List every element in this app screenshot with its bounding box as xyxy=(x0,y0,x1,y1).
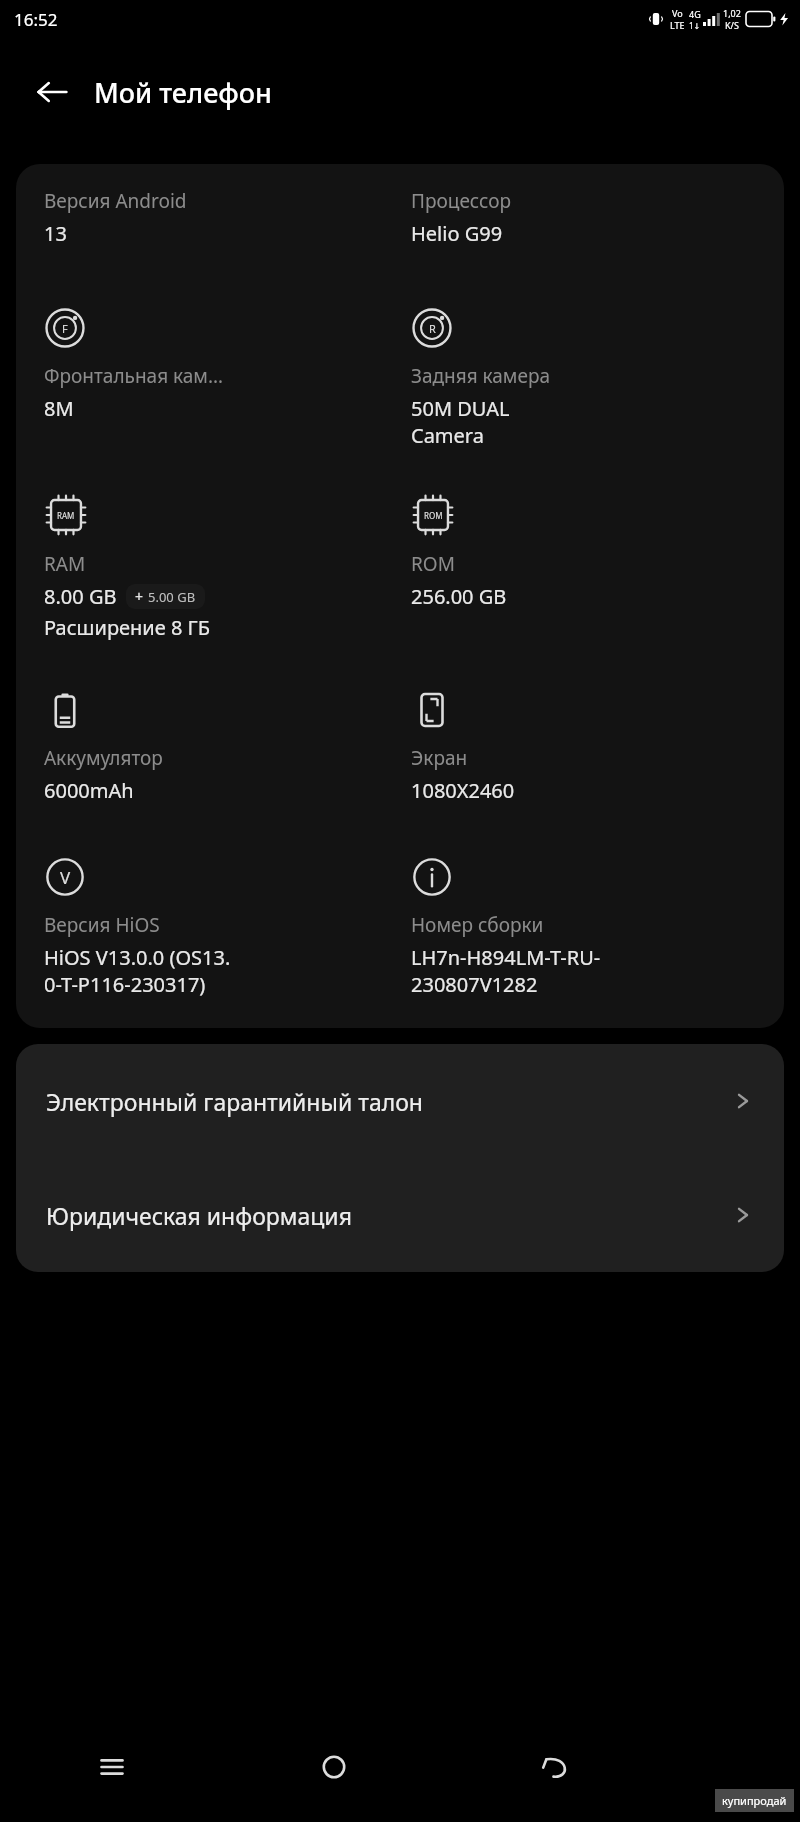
staticText: 6000mAh xyxy=(44,777,134,804)
staticText: Мой телефон xyxy=(94,74,272,111)
staticText: Процессор xyxy=(411,188,512,214)
button[interactable]: Электронный гарантийный талон xyxy=(16,1044,784,1158)
staticText: Задняя камера xyxy=(411,363,551,389)
staticText: V xyxy=(60,866,71,889)
staticText: Аккумулятор xyxy=(44,745,163,771)
staticText: Номер сборки xyxy=(411,912,544,938)
staticText: Версия HiOS xyxy=(44,912,160,938)
staticText: Экран xyxy=(411,745,468,771)
staticText: 5.00 GB xyxy=(148,588,196,606)
staticText: 50M DUAL xyxy=(411,395,510,422)
staticText: Расширение 8 ГБ xyxy=(44,614,211,641)
staticText: 1,02 xyxy=(723,7,741,19)
staticText: 256.00 GB xyxy=(411,583,507,610)
staticText: Электронный гарантийный талон xyxy=(46,1086,732,1117)
button[interactable]: Назад xyxy=(26,66,78,118)
staticText: ROM xyxy=(411,551,455,577)
staticText: Юридическая информация xyxy=(46,1200,732,1231)
button[interactable]: Недавние приложения xyxy=(0,1712,223,1822)
staticText: + xyxy=(135,587,144,606)
staticText: 8.00 GB xyxy=(44,583,117,610)
staticText: F xyxy=(62,321,68,336)
staticText: HiOS V13.0.0 (OS13. xyxy=(44,944,231,971)
button[interactable]: Юридическая информация xyxy=(16,1158,784,1272)
staticText: 1↓ xyxy=(689,20,701,31)
staticText: R xyxy=(429,321,436,336)
staticText: LTE xyxy=(670,19,685,31)
staticText: K/S xyxy=(725,19,739,31)
staticText: 0-T-P116-230317) xyxy=(44,971,206,998)
staticText: 13 xyxy=(44,220,67,247)
staticText: 16:52 xyxy=(14,8,58,31)
staticText: RAM xyxy=(44,551,86,577)
staticText: 230807V1282 xyxy=(411,971,538,998)
staticText: Helio G99 xyxy=(411,220,503,247)
button[interactable]: Главный экран xyxy=(223,1712,445,1822)
staticText: LH7n-H894LM-T-RU- xyxy=(411,944,601,971)
staticText: 8M xyxy=(44,395,74,422)
staticText: Версия Android xyxy=(44,188,187,214)
button[interactable]: Назад xyxy=(445,1712,667,1822)
staticText: RAM xyxy=(57,510,75,521)
staticText: Camera xyxy=(411,422,484,449)
staticText: ROM xyxy=(424,510,443,521)
staticText: 1080X2460 xyxy=(411,777,515,804)
staticText: 4G xyxy=(689,8,701,20)
staticText: Фронтальная кам… xyxy=(44,363,223,389)
staticText: Vo xyxy=(672,7,683,19)
staticText: купипродай xyxy=(722,1793,787,1808)
